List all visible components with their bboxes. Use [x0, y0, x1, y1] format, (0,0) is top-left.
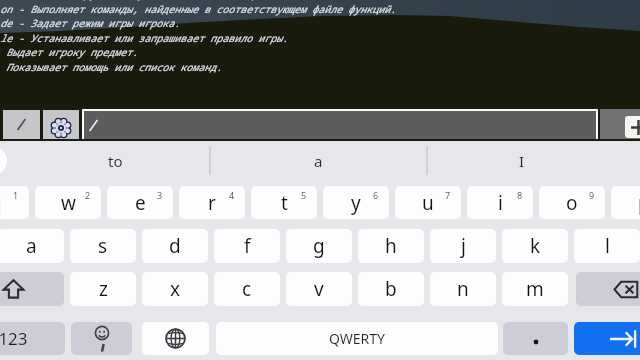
button[interactable]: w — [35, 186, 101, 219]
button[interactable]: h — [358, 229, 424, 263]
staticText: j — [461, 233, 466, 259]
staticText: a — [26, 233, 37, 259]
staticText: e — [135, 190, 146, 216]
staticText: p — [638, 190, 640, 216]
staticText: c — [242, 276, 252, 302]
button[interactable]: r — [179, 186, 245, 219]
button[interactable]: to — [65, 145, 165, 177]
button[interactable]: b — [358, 272, 424, 306]
staticText: g — [313, 233, 325, 259]
button[interactable] — [503, 322, 568, 355]
button[interactable]: Change language — [142, 322, 209, 355]
staticText: k — [530, 233, 541, 259]
button[interactable]: Backspace — [576, 272, 640, 306]
staticText: ?123 — [0, 327, 28, 350]
staticText: 9 — [589, 189, 595, 201]
button[interactable]: x — [142, 272, 208, 306]
button[interactable]: k — [502, 229, 568, 263]
staticText: edit - Редактирует или удаляет блоки в в… — [0, 0, 318, 1]
button[interactable]: a — [0, 229, 64, 263]
button[interactable]: Shift — [0, 272, 64, 306]
staticText: to — [108, 151, 123, 171]
staticText: t — [281, 190, 288, 216]
button[interactable]: y — [323, 186, 389, 219]
button[interactable]: d — [142, 229, 208, 263]
button[interactable]: j — [430, 229, 496, 263]
button[interactable]: l — [574, 229, 640, 263]
staticText: x — [170, 276, 181, 302]
button[interactable]: z — [70, 272, 136, 306]
button[interactable]: g — [286, 229, 352, 263]
button[interactable]: o — [539, 186, 605, 219]
staticText: de - Задает режим игры игрока. — [0, 16, 180, 30]
staticText: l — [605, 233, 610, 259]
staticText: v — [314, 276, 324, 302]
staticText: d — [169, 233, 181, 259]
staticText: le - Устанавливает или запрашивает прави… — [0, 31, 288, 45]
button[interactable]: e — [107, 186, 173, 219]
button[interactable] — [3, 110, 40, 139]
staticText: q — [0, 190, 2, 216]
button[interactable]: u — [395, 186, 461, 219]
staticText: s — [98, 233, 108, 259]
staticText: 6 — [373, 189, 379, 201]
staticText: 3 — [157, 189, 163, 201]
staticText: n — [457, 276, 469, 302]
button[interactable]: v — [286, 272, 352, 306]
staticText: b — [385, 276, 397, 302]
staticText: w — [61, 190, 76, 216]
staticText: 4 — [229, 189, 235, 201]
button[interactable]: q — [0, 186, 29, 219]
staticText: i — [498, 190, 503, 216]
staticText: z — [99, 276, 108, 302]
button[interactable]: p — [611, 186, 640, 219]
staticText: o — [566, 190, 578, 216]
staticText: 5 — [301, 189, 307, 201]
button[interactable]: n — [430, 272, 496, 306]
button[interactable]: s — [70, 229, 136, 263]
button[interactable]: ?123 — [0, 322, 65, 355]
button[interactable]: a — [268, 145, 368, 177]
staticText: y — [351, 190, 361, 216]
button[interactable]: Add — [625, 116, 640, 138]
button[interactable]: f — [214, 229, 280, 263]
staticText: u — [422, 190, 434, 216]
staticText: on - Выполняет команды, найденные в соот… — [0, 2, 396, 16]
staticText: Выдает игроку предмет. — [0, 45, 138, 59]
staticText: 7 — [445, 189, 451, 201]
staticText: a — [314, 151, 323, 171]
staticText: Показывает помощь или список команд. — [0, 60, 222, 74]
staticText: h — [385, 233, 397, 259]
staticText: 2 — [85, 189, 91, 201]
button[interactable]: t — [251, 186, 317, 219]
button[interactable]: I — [472, 145, 572, 177]
button[interactable]: c — [214, 272, 280, 306]
staticText: m — [526, 276, 544, 302]
button[interactable]: m — [502, 272, 568, 306]
button[interactable]: Emoji — [71, 322, 132, 355]
button[interactable]: QWERTY — [216, 322, 498, 355]
staticText: QWERTY — [329, 329, 386, 348]
button[interactable] — [84, 111, 596, 139]
button[interactable]: Enter — [574, 322, 640, 355]
staticText: 8 — [517, 189, 523, 201]
staticText: I — [519, 151, 525, 171]
staticText: r — [208, 190, 216, 216]
staticText: f — [244, 233, 251, 259]
staticText: 1 — [13, 189, 19, 201]
button[interactable]: i — [467, 186, 533, 219]
button[interactable]: Settings — [43, 110, 79, 139]
